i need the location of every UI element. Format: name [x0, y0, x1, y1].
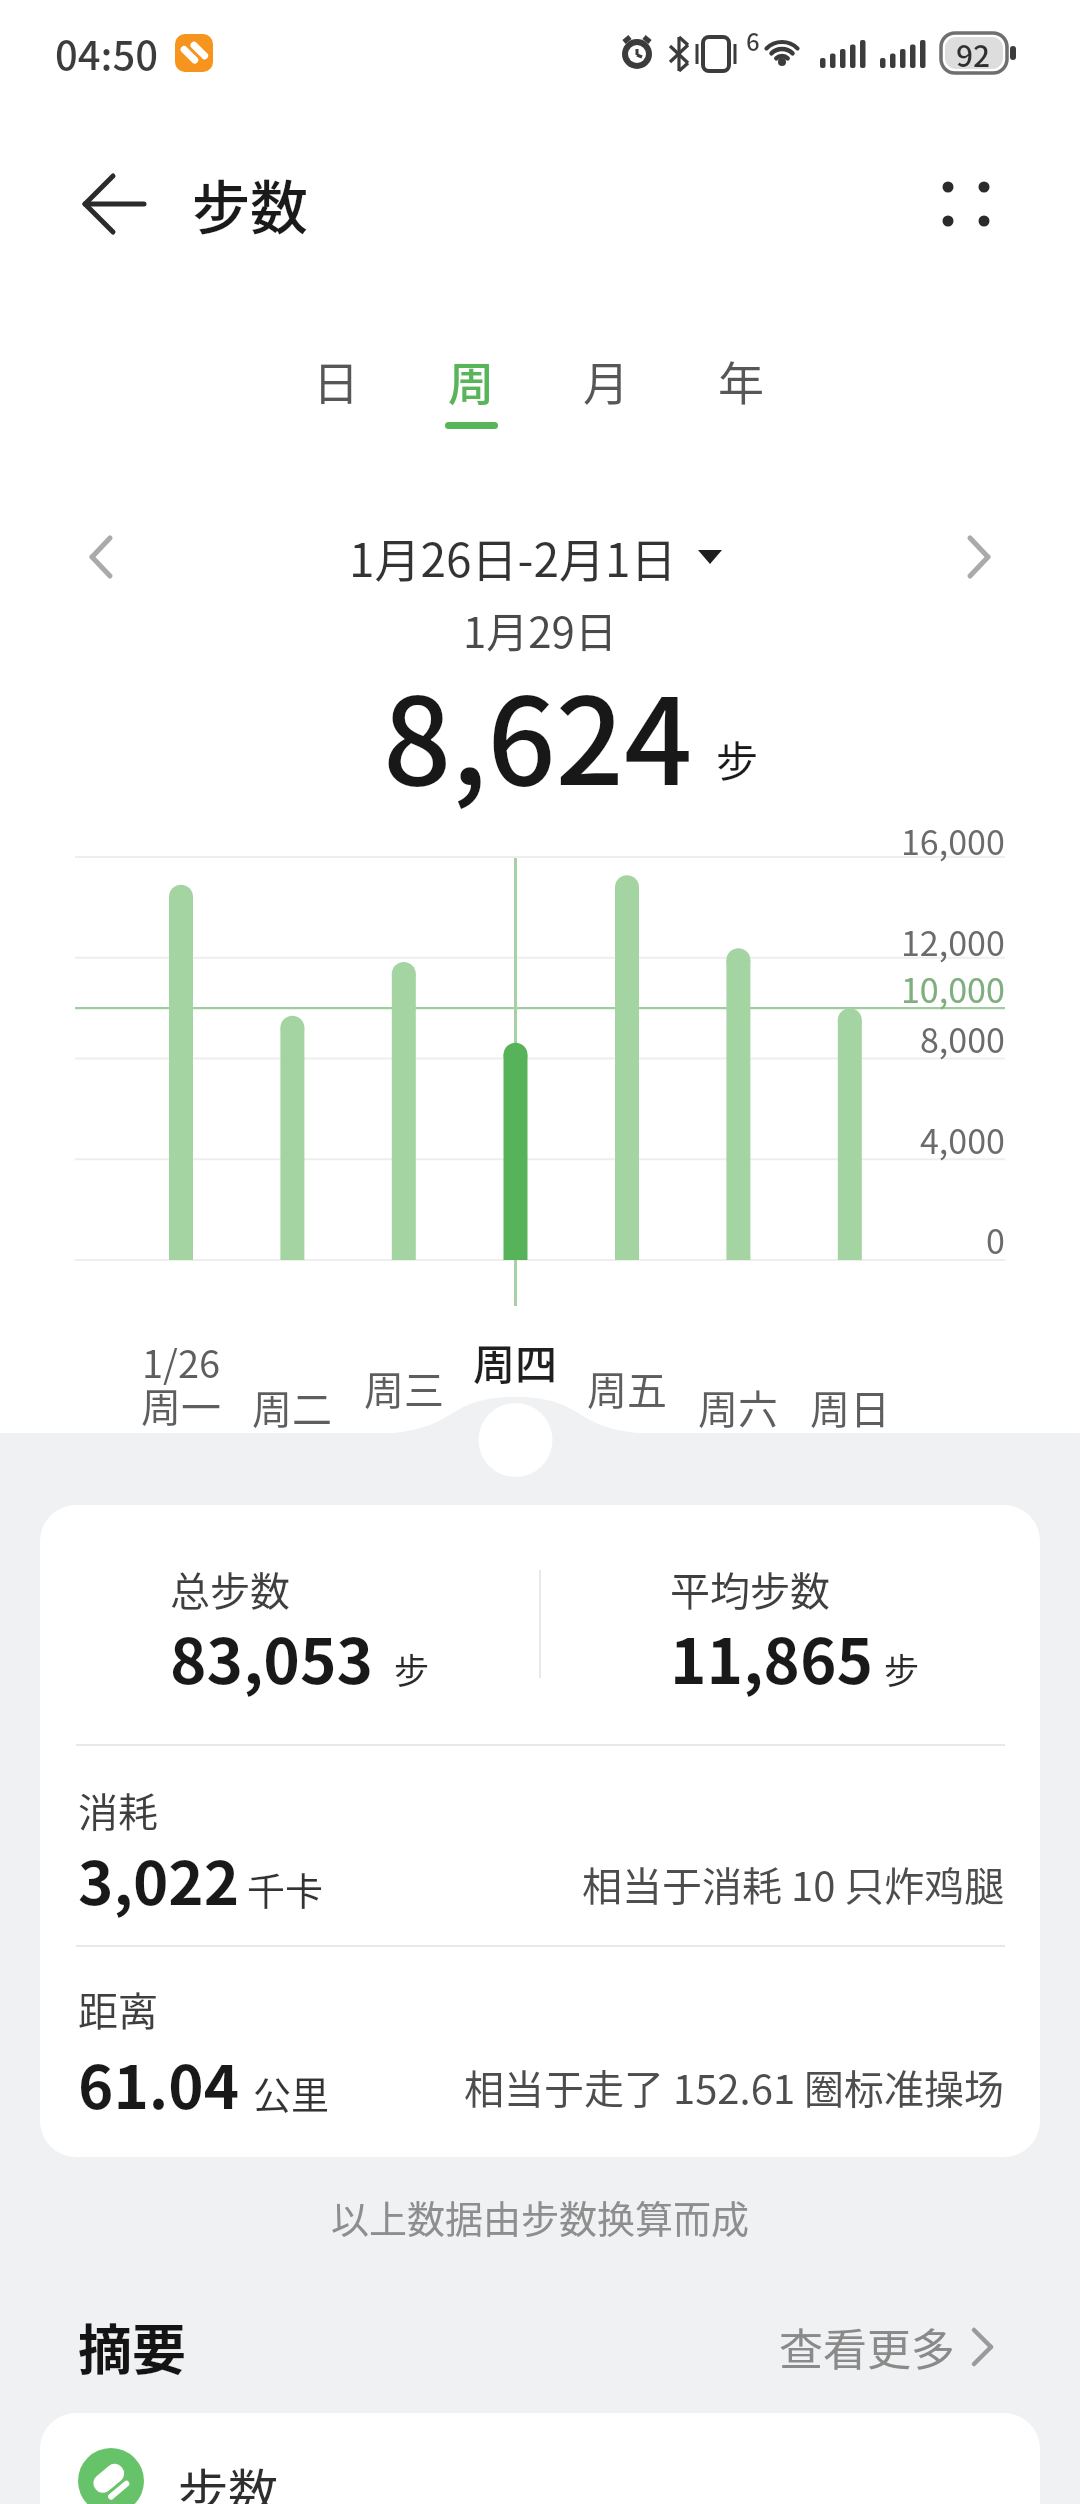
button[interactable]	[58, 156, 154, 252]
button[interactable]: 1月26日-2月1日	[349, 524, 677, 591]
staticText: 步	[394, 1643, 430, 1694]
button[interactable]	[935, 512, 1025, 602]
staticText: 周日	[810, 1378, 890, 1436]
staticText: 11,865	[670, 1612, 874, 1702]
button[interactable]: 年	[695, 340, 787, 420]
staticText: 04:50	[55, 24, 159, 82]
button[interactable]	[910, 152, 1020, 256]
staticText: 周二	[252, 1378, 332, 1436]
staticText: 摘要	[78, 2307, 186, 2385]
staticText: 周六	[698, 1378, 778, 1436]
staticText: 周	[448, 347, 494, 414]
staticText: 1月26日-2月1日	[349, 524, 677, 591]
staticText: 周三	[364, 1359, 444, 1417]
staticText: 公里	[253, 2065, 330, 2120]
staticText: 4,000	[920, 1115, 1005, 1164]
staticText: 步数	[192, 162, 309, 246]
button[interactable]: 周	[425, 340, 517, 420]
button[interactable]	[40, 2413, 1040, 2504]
staticText: 步	[716, 728, 759, 789]
staticText: 以上数据由步数换算而成	[331, 2189, 750, 2244]
staticText: 6	[746, 23, 760, 58]
button[interactable]: 月	[560, 340, 652, 420]
staticText: 10,000	[901, 964, 1005, 1013]
staticText: 平均步数	[670, 1560, 830, 1618]
staticText: 消耗	[78, 1781, 158, 1839]
staticText: 步数	[178, 2453, 278, 2504]
staticText: 千卡	[247, 1861, 324, 1916]
staticText: 周一	[141, 1376, 221, 1434]
staticText: 83,053	[170, 1612, 374, 1702]
button[interactable]: 查看更多	[779, 2315, 955, 2379]
staticText: 相当于消耗 10 只炸鸡腿	[582, 1855, 1005, 1913]
staticText: 总步数	[170, 1560, 290, 1618]
staticText: 步	[884, 1643, 920, 1694]
staticText: 查看更多	[779, 2315, 955, 2379]
staticText: 年	[718, 347, 764, 414]
staticText: 8,624	[383, 646, 693, 820]
staticText: 相当于走了 152.61 圈标准操场	[464, 2058, 1005, 2116]
staticText: 16,000	[901, 816, 1005, 865]
staticText: 92	[956, 32, 991, 75]
staticText: 1月29日	[463, 599, 617, 660]
staticText: 61.04	[78, 2039, 240, 2126]
staticText: 1/26	[142, 1334, 221, 1389]
staticText: 距离	[78, 1980, 158, 2038]
staticText: 3,022	[78, 1835, 240, 1922]
button[interactable]	[55, 512, 145, 602]
staticText: 周四	[473, 1331, 558, 1392]
staticText: 12,000	[901, 917, 1005, 966]
staticText: 月	[583, 347, 629, 414]
staticText: 周五	[587, 1359, 667, 1417]
staticText: 0	[986, 1215, 1005, 1264]
button[interactable]: 日	[290, 340, 382, 420]
staticText: 8,000	[920, 1014, 1005, 1063]
staticText: 日	[313, 347, 359, 414]
